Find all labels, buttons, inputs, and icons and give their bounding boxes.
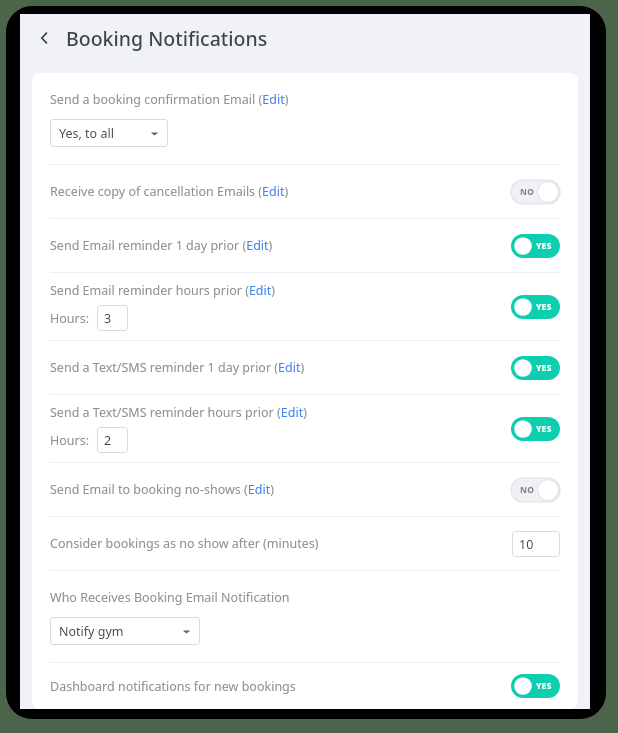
staticText: 2	[104, 432, 112, 449]
staticText: Hours:	[50, 432, 90, 449]
staticText: NO	[520, 484, 535, 496]
staticText: 3	[104, 310, 112, 327]
button[interactable]: Toggle off	[511, 180, 560, 204]
staticText: Who Receives Booking Email Notification	[50, 589, 290, 606]
button[interactable]: Toggle on	[511, 234, 560, 258]
staticText: Consider bookings as no show after (minu…	[50, 535, 319, 552]
staticText: Booking Notifications	[66, 25, 268, 52]
button[interactable]: Toggle on	[511, 295, 560, 319]
staticText: Hours:	[50, 310, 90, 327]
button[interactable]: 3	[97, 305, 128, 331]
button[interactable]: Receive copy of cancellation Emails (Edi…	[32, 165, 578, 218]
staticText: YES	[536, 680, 552, 692]
staticText: Send Email reminder 1 day prior (Edit)	[50, 237, 273, 254]
button[interactable]: Notify gym	[50, 617, 200, 645]
staticText: Send a booking confirmation Email (Edit)	[50, 91, 289, 108]
staticText: Yes, to all	[59, 125, 150, 142]
staticText: YES	[536, 423, 552, 435]
staticText: Send Email reminder hours prior (Edit)	[50, 282, 276, 299]
button[interactable]: Toggle on	[511, 674, 560, 698]
staticText: Send a Text/SMS reminder 1 day prior (Ed…	[50, 359, 305, 376]
button[interactable]: Send Email reminder 1 day prior (Edit)	[32, 219, 578, 272]
staticText: 10	[519, 536, 534, 553]
staticText: NO	[520, 186, 535, 198]
staticText: YES	[536, 362, 552, 374]
button[interactable]: Toggle on	[511, 417, 560, 441]
staticText: Notify gym	[59, 623, 182, 640]
button[interactable]: Send Email to booking no-shows (Edit)	[32, 463, 578, 516]
button[interactable]: Send a Text/SMS reminder hours prior (Ed…	[32, 395, 578, 462]
button[interactable]: Dashboard notifications for new bookings	[32, 663, 578, 709]
button[interactable]: Back	[32, 25, 58, 51]
button[interactable]: Toggle on	[511, 356, 560, 380]
staticText: Receive copy of cancellation Emails (Edi…	[50, 183, 289, 200]
staticText: Dashboard notifications for new bookings	[50, 678, 296, 695]
button[interactable]: 10	[512, 531, 560, 557]
button[interactable]: Send Email reminder hours prior (Edit)	[32, 273, 578, 340]
staticText: YES	[536, 240, 552, 252]
staticText: Send Email to booking no-shows (Edit)	[50, 481, 274, 498]
button[interactable]: Toggle off	[511, 478, 560, 502]
button[interactable]: Send a Text/SMS reminder 1 day prior (Ed…	[32, 341, 578, 394]
button[interactable]: 2	[97, 427, 128, 453]
staticText: Send a Text/SMS reminder hours prior (Ed…	[50, 404, 307, 421]
staticText: YES	[536, 301, 552, 313]
button[interactable]: Consider bookings as no show after (minu…	[32, 517, 578, 570]
button[interactable]: Yes, to all	[50, 119, 168, 147]
